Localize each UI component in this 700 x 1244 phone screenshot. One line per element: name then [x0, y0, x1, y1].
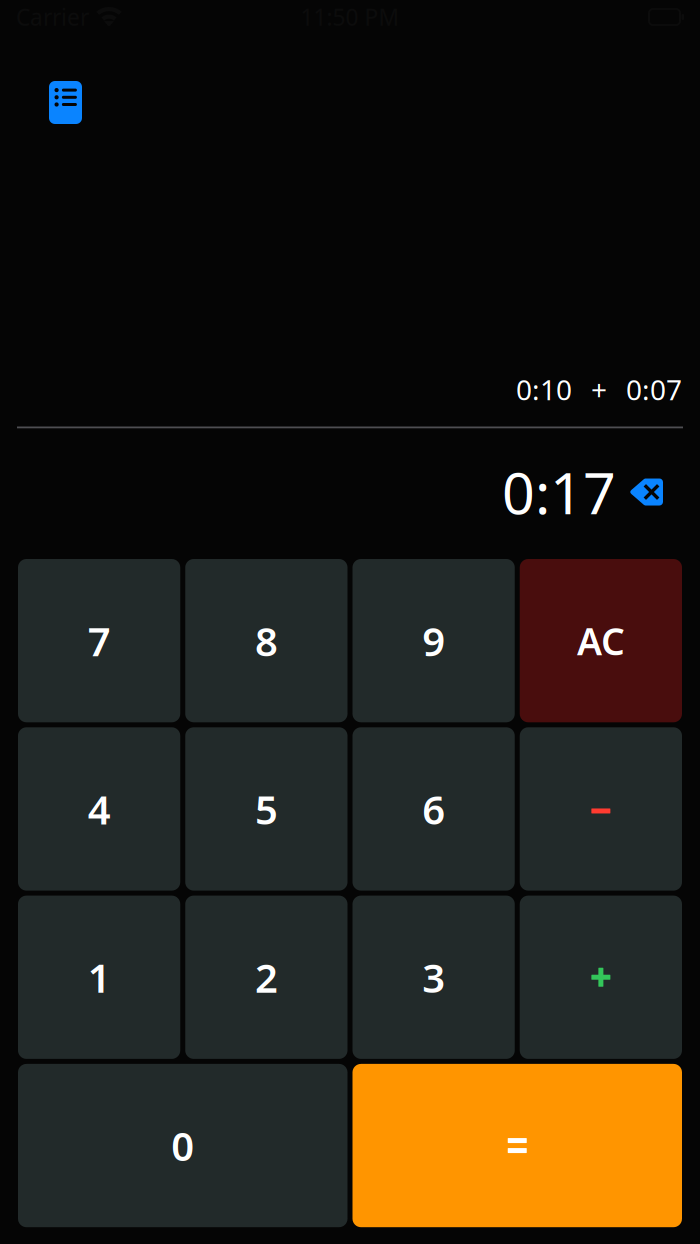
button[interactable]: 9	[352, 559, 515, 722]
button[interactable]: 2	[185, 896, 347, 1059]
button[interactable]: Subtract	[520, 727, 682, 891]
button[interactable]: 1	[18, 896, 180, 1059]
button[interactable]: 5	[185, 727, 347, 891]
staticText: 0	[171, 1119, 194, 1172]
staticText: AC	[577, 616, 625, 665]
staticText: 2	[255, 951, 278, 1004]
staticText: 0:07	[626, 371, 682, 408]
button[interactable]: 7	[18, 559, 180, 722]
staticText: 7	[88, 614, 111, 667]
button[interactable]: 8	[185, 559, 347, 722]
staticText: 0:17	[502, 454, 616, 530]
button[interactable]: History	[49, 81, 82, 124]
button[interactable]: Equals	[352, 1064, 682, 1227]
button[interactable]: AC	[520, 559, 682, 722]
staticText: 9	[422, 614, 445, 667]
button[interactable]: 4	[18, 727, 180, 891]
button[interactable]: 0	[18, 1064, 347, 1227]
staticText: +	[591, 371, 607, 408]
button[interactable]: 6	[352, 727, 515, 891]
staticText: 8	[255, 614, 278, 667]
staticText: 6	[422, 782, 445, 835]
button[interactable]: 3	[352, 896, 515, 1059]
staticText: 3	[422, 951, 445, 1004]
staticText: 0:10	[516, 371, 572, 408]
staticText: 1	[88, 951, 111, 1004]
button[interactable]: Delete	[630, 478, 663, 505]
staticText: 4	[88, 782, 111, 835]
button[interactable]: Add	[520, 896, 682, 1059]
staticText: 5	[255, 782, 278, 835]
